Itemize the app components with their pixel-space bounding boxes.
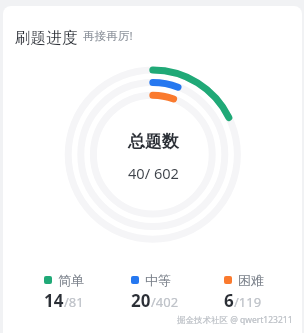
staticText: 6 bbox=[224, 289, 234, 312]
staticText: /119 bbox=[234, 293, 262, 311]
staticText: 20 bbox=[131, 289, 151, 312]
staticText: 掘金技术社区 @ qwert123211 bbox=[177, 314, 293, 326]
staticText: /402 bbox=[151, 293, 179, 311]
staticText: /81 bbox=[64, 293, 84, 311]
staticText: 困难 bbox=[238, 272, 264, 288]
button[interactable]: 困难 bbox=[222, 270, 266, 314]
staticText: 40/ 602 bbox=[128, 163, 179, 183]
staticText: 14 bbox=[44, 289, 64, 312]
staticText: 简单 bbox=[58, 272, 84, 288]
staticText: 中等 bbox=[145, 272, 171, 288]
button[interactable]: 中等 bbox=[129, 270, 181, 314]
staticText: 再接再厉! bbox=[83, 28, 133, 44]
button[interactable]: 简单 bbox=[42, 270, 86, 314]
staticText: 总题数 bbox=[128, 131, 179, 152]
staticText: 刷题进度 bbox=[15, 28, 78, 48]
